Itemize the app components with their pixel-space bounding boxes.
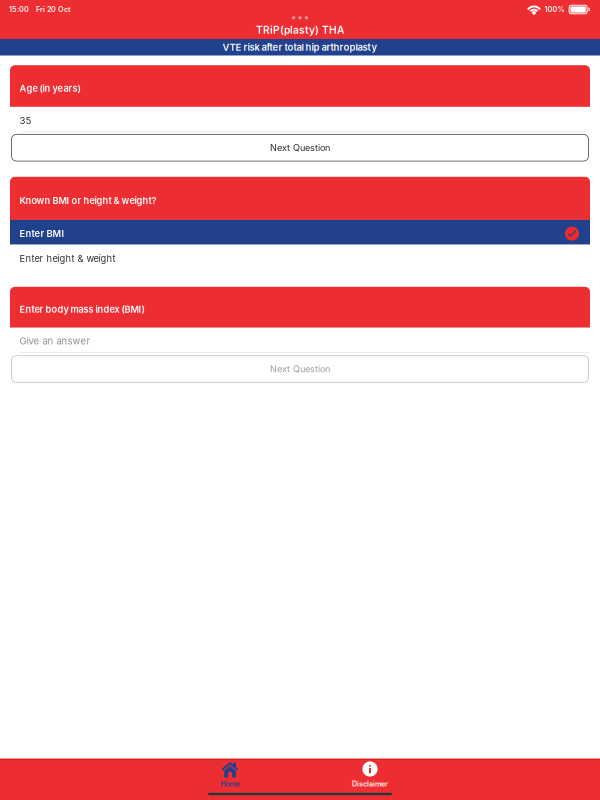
staticText: Home — [220, 779, 239, 788]
staticText: Enter height & weight — [20, 253, 116, 264]
staticText: 100% — [544, 5, 564, 14]
button[interactable]: Home — [188, 760, 272, 790]
button[interactable]: Next Question — [11, 356, 588, 382]
staticText: Give an answer — [20, 335, 91, 347]
staticText: Enter body mass index (BMI) — [20, 304, 145, 315]
staticText: Fri 20 Oct — [36, 5, 71, 14]
staticText: 35 — [20, 115, 32, 126]
button[interactable]: Enter BMI — [10, 220, 590, 245]
staticText: Known BMI or height & weight? — [20, 195, 157, 206]
button[interactable]: Enter height & weight — [10, 245, 590, 271]
staticText: Disclaimer — [352, 779, 388, 788]
button[interactable]: Next Question — [11, 134, 588, 161]
staticText: 15:00 — [9, 5, 29, 14]
staticText: VTE risk after total hip arthroplasty — [222, 42, 377, 53]
staticText: Enter BMI — [20, 228, 65, 239]
staticText: Next Question — [270, 142, 330, 153]
staticText: Next Question — [270, 364, 330, 375]
button[interactable]: Disclaimer — [328, 760, 412, 790]
staticText: Age (in years) — [20, 83, 81, 94]
staticText: TRiP(plasty) THA — [256, 24, 344, 36]
